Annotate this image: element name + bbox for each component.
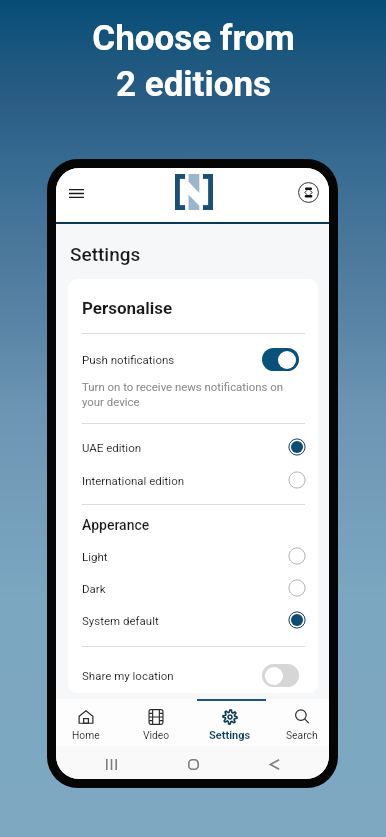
staticText: Turn on to receive news notifications on…	[82, 380, 284, 409]
staticText: International edition	[82, 474, 185, 487]
button[interactable]: System default	[68, 604, 318, 636]
button[interactable]: Home	[177, 746, 209, 779]
button[interactable]: Home	[58, 699, 114, 746]
staticText: Personalise	[82, 298, 173, 318]
button[interactable]: Account	[293, 177, 323, 207]
staticText: Search	[286, 729, 318, 741]
staticText: Video	[143, 729, 170, 741]
staticText: Choose from 2 editions	[92, 18, 295, 104]
button[interactable]: Back	[258, 746, 290, 779]
button[interactable]: Search	[274, 699, 329, 746]
staticText: Light	[82, 550, 108, 563]
button[interactable]: Push notifications toggle	[262, 348, 299, 371]
button[interactable]: Light	[68, 540, 318, 572]
staticText: Settings	[209, 729, 251, 742]
button[interactable]: Menu	[59, 176, 93, 210]
button[interactable]: Video	[128, 699, 184, 746]
button[interactable]: Dark	[68, 572, 318, 604]
button[interactable]: Share my location toggle	[262, 664, 299, 687]
staticText: Home	[72, 729, 100, 741]
button[interactable]: International edition	[68, 464, 318, 496]
staticText: UAE edition	[82, 441, 142, 454]
staticText: Dark	[82, 582, 106, 595]
button[interactable]: Settings	[202, 699, 258, 746]
button[interactable]: Recents	[95, 746, 127, 779]
button[interactable]: UAE edition	[68, 431, 318, 463]
staticText: System default	[82, 614, 159, 627]
staticText: Push notifications	[82, 353, 175, 366]
staticText: Apperance	[82, 517, 150, 533]
staticText: Settings	[70, 243, 141, 265]
staticText: Share my location	[82, 669, 174, 682]
